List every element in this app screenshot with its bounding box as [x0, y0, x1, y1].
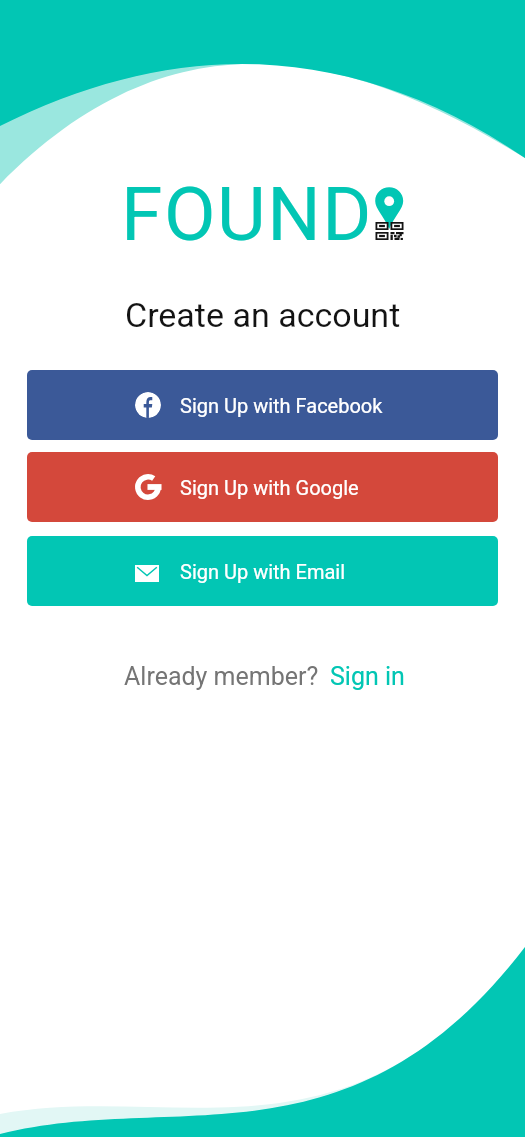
staticText: FOUND — [121, 170, 373, 258]
button[interactable]: Email — [27, 536, 498, 606]
staticText: Sign Up with Google — [180, 476, 359, 499]
button[interactable]: Sign in — [330, 662, 405, 691]
button[interactable]: Facebook — [27, 370, 498, 440]
staticText: Already member? — [124, 662, 319, 691]
other: Email — [135, 565, 159, 582]
other: Facebook — [135, 392, 161, 418]
staticText: Sign in — [330, 662, 405, 691]
staticText: Sign Up with Facebook — [180, 394, 383, 417]
staticText: Sign Up with Email — [180, 560, 346, 583]
button[interactable]: Google — [27, 452, 498, 522]
staticText: Create an account — [125, 295, 401, 335]
other: Google — [135, 474, 161, 500]
